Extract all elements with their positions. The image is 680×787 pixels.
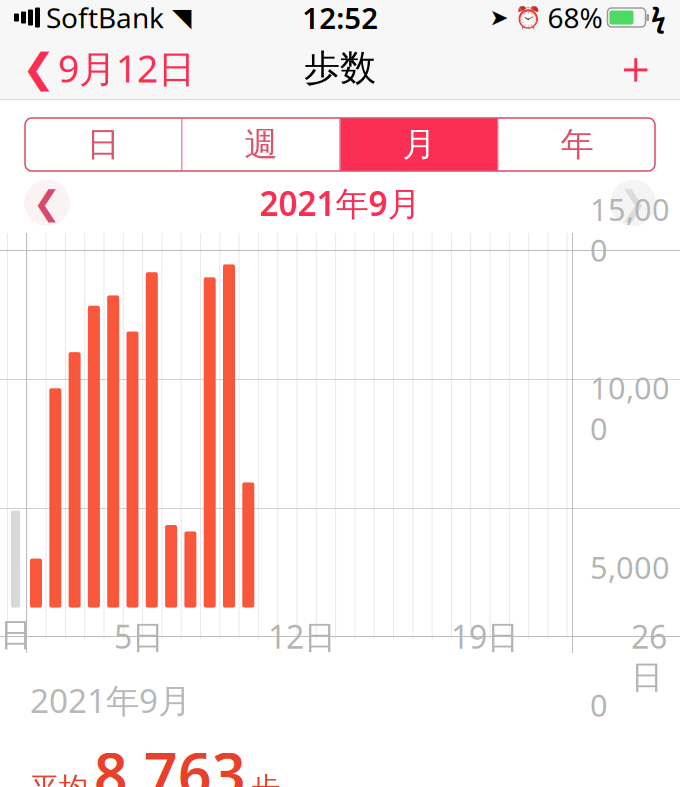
staticText: 平均 xyxy=(30,770,88,787)
staticText: 週 xyxy=(244,124,277,165)
button[interactable]: 日 xyxy=(25,118,181,171)
staticText: SoftBank xyxy=(46,0,164,36)
staticText: 日 xyxy=(0,615,32,654)
staticText: 26日 xyxy=(631,615,667,697)
staticText: 12日 xyxy=(268,615,336,658)
button[interactable]: 週 xyxy=(183,118,339,171)
staticText: 5,000 xyxy=(590,547,670,587)
staticText: 歩 xyxy=(251,770,280,787)
staticText: ❮ xyxy=(33,184,61,222)
staticText: 年 xyxy=(560,124,593,165)
staticText: ϟ xyxy=(651,0,666,35)
staticText: 2021年9月 xyxy=(259,181,420,225)
button[interactable]: 月 xyxy=(341,118,497,171)
staticText: 10,000 xyxy=(590,367,670,449)
staticText: 歩数 xyxy=(304,46,376,90)
staticText: 月 xyxy=(402,124,435,165)
button[interactable]: ❮ xyxy=(8,35,209,101)
staticText: 15,000 xyxy=(590,189,670,270)
button[interactable]: 前の月 xyxy=(24,180,70,226)
staticText: 5日 xyxy=(114,615,164,658)
staticText: 12:52 xyxy=(302,0,378,37)
staticText: ＋ xyxy=(613,40,658,96)
staticText: ➤ xyxy=(489,5,508,30)
staticText: ◥ xyxy=(172,3,191,32)
button[interactable]: データを追加 xyxy=(599,36,672,100)
staticText: 0 xyxy=(590,684,608,725)
staticText: 8,763 xyxy=(94,734,246,787)
button[interactable]: 次の月 xyxy=(610,180,656,226)
staticText: ⏰ xyxy=(514,5,541,30)
staticText: 9月12日 xyxy=(58,43,195,93)
staticText: 2021年9月 xyxy=(30,678,191,722)
staticText: 68% xyxy=(547,0,602,36)
button[interactable]: 年 xyxy=(499,118,655,171)
staticText: ❮ xyxy=(22,45,56,91)
staticText: 19日 xyxy=(451,615,519,658)
staticText: ❯ xyxy=(619,184,647,222)
staticText: 日 xyxy=(86,124,119,165)
